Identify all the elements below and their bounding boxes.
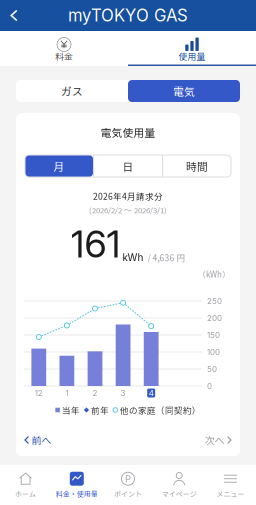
staticText: 料金 bbox=[55, 50, 73, 62]
staticText: 次へ bbox=[205, 433, 225, 447]
staticText: / 4,636 円 bbox=[147, 251, 185, 264]
staticText: 他の家庭（同契約） bbox=[118, 404, 201, 416]
staticText: 前年 bbox=[89, 404, 113, 416]
staticText: ガス bbox=[61, 83, 83, 99]
button[interactable]: 前へ bbox=[25, 429, 57, 451]
staticText: 150 bbox=[207, 330, 220, 340]
staticText: メニュー bbox=[216, 489, 244, 499]
staticText: 2026年4月請求分 bbox=[93, 190, 163, 202]
button[interactable]: Back bbox=[0, 0, 28, 31]
staticText: 100 bbox=[207, 347, 220, 357]
button[interactable]: 料金 bbox=[0, 31, 128, 66]
staticText: ホーム bbox=[15, 489, 36, 499]
button[interactable]: 次へ bbox=[199, 429, 231, 451]
button[interactable]: 日 bbox=[94, 155, 162, 177]
staticText: 時間 bbox=[186, 158, 208, 174]
button[interactable]: ホーム bbox=[0, 465, 51, 505]
staticText: 0 bbox=[207, 381, 212, 391]
staticText: 250 bbox=[207, 296, 222, 306]
staticText: 50 bbox=[207, 364, 217, 374]
button[interactable]: メニュー bbox=[205, 465, 256, 505]
staticText: 3 bbox=[121, 388, 126, 398]
button[interactable]: 時間 bbox=[163, 155, 231, 177]
button[interactable]: 使用量 bbox=[128, 31, 256, 66]
staticText: 料金・使用量 bbox=[56, 489, 98, 499]
staticText: 200 bbox=[207, 313, 222, 323]
staticText: 前へ bbox=[31, 433, 51, 447]
staticText: 電気 bbox=[173, 83, 195, 99]
button[interactable]: 月 bbox=[25, 155, 93, 177]
button[interactable]: 電気 bbox=[128, 80, 240, 102]
button[interactable]: ガス bbox=[16, 80, 128, 102]
button[interactable]: 料金・使用量 bbox=[51, 465, 102, 505]
staticText: 2 bbox=[92, 388, 97, 398]
staticText: （kWh） bbox=[198, 268, 230, 280]
staticText: 電気使用量 bbox=[100, 124, 155, 140]
staticText: 1 bbox=[65, 388, 68, 398]
staticText: (2026/2/2 〜 2026/3/1) bbox=[89, 204, 167, 216]
staticText: 当年 bbox=[60, 404, 84, 416]
button[interactable]: マイページ bbox=[154, 465, 205, 505]
staticText: P bbox=[125, 473, 131, 484]
staticText: ポイント bbox=[114, 489, 142, 499]
staticText: 12 bbox=[35, 388, 43, 398]
staticText: kWh bbox=[122, 251, 143, 264]
button[interactable]: P bbox=[102, 465, 154, 505]
staticText: 161 bbox=[70, 221, 120, 267]
staticText: マイページ bbox=[162, 489, 197, 499]
staticText: 月 bbox=[53, 158, 64, 174]
staticText: 日 bbox=[122, 158, 133, 174]
staticText: 使用量 bbox=[178, 50, 205, 62]
staticText: 4 bbox=[149, 388, 154, 398]
staticText: myTOKYO GAS bbox=[68, 5, 188, 26]
